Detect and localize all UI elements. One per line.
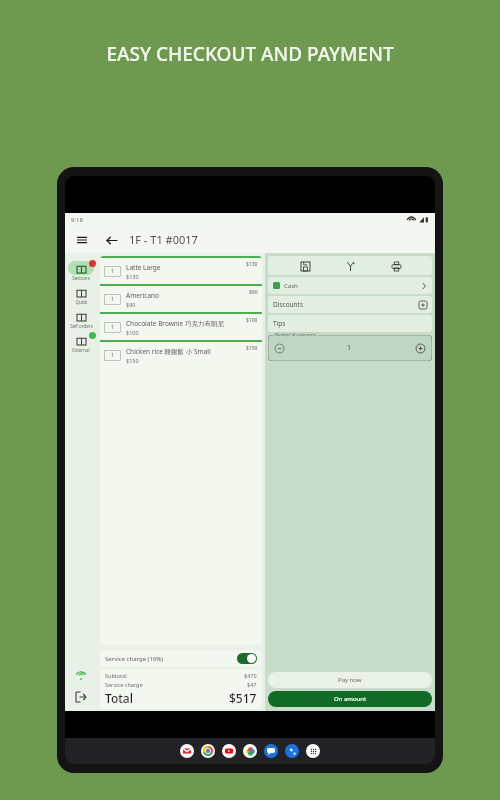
button[interactable]: 1 — [100, 340, 262, 368]
button[interactable]: Service charge (10%) — [100, 650, 262, 667]
staticText: $130 — [126, 273, 139, 280]
staticText: $90 — [126, 301, 136, 308]
button[interactable]: External — [65, 331, 97, 355]
staticText: 9:18 — [71, 216, 83, 224]
button[interactable]: 1 — [100, 312, 262, 340]
staticText: 1 — [111, 324, 114, 331]
button[interactable]: Save — [296, 257, 314, 275]
staticText: Latte Large — [126, 263, 161, 272]
staticText: 1 — [111, 296, 114, 303]
button[interactable]: App — [201, 744, 215, 758]
staticText: Total — [105, 690, 133, 706]
staticText: Chicken rice 雞腿飯 小 Small — [126, 347, 211, 356]
button[interactable]: Pay now — [268, 672, 432, 688]
staticText: Sections — [72, 275, 90, 281]
staticText: Cash — [284, 282, 298, 290]
staticText: External — [72, 347, 90, 353]
staticText: Tips — [273, 319, 286, 328]
staticText: $470 — [244, 672, 257, 679]
button[interactable]: Increase — [416, 344, 425, 353]
button[interactable]: Tips — [268, 315, 432, 332]
staticText: Quick — [75, 299, 88, 305]
staticText: Service charge — [105, 681, 143, 688]
button[interactable]: App — [180, 744, 194, 758]
button[interactable]: App — [264, 744, 278, 758]
staticText: EASY CHECKOUT AND PAYMENT — [0, 41, 500, 67]
staticText: Number of customers — [274, 332, 318, 337]
staticText: 1F - T1 #0017 — [129, 232, 198, 247]
button[interactable]: Back — [99, 228, 123, 252]
button[interactable]: Quick — [65, 283, 97, 307]
staticText: Self orders — [70, 323, 93, 329]
staticText: Discounts — [273, 300, 304, 309]
button[interactable]: Decrease — [275, 344, 284, 353]
button[interactable]: Split — [341, 257, 359, 275]
staticText: 1 — [111, 268, 114, 275]
staticText: Service charge (10%) — [105, 655, 164, 663]
staticText: $100 — [246, 317, 258, 324]
button[interactable]: App — [285, 744, 299, 758]
button[interactable]: 1 — [100, 256, 262, 284]
staticText: $150 — [126, 357, 139, 364]
button[interactable]: App — [222, 744, 236, 758]
button[interactable]: Logout — [70, 686, 92, 708]
staticText: Subtotal — [105, 672, 127, 679]
button[interactable]: 1 — [100, 284, 262, 312]
staticText: Americano — [126, 291, 159, 300]
button[interactable]: App — [243, 744, 257, 758]
staticText: $47 — [247, 681, 257, 688]
staticText: $517 — [229, 690, 257, 706]
button[interactable]: Cash — [268, 277, 432, 294]
staticText: On amount — [334, 695, 367, 703]
button[interactable]: Menu — [65, 226, 99, 253]
staticText: $130 — [246, 261, 258, 268]
button[interactable]: Self orders — [65, 307, 97, 331]
button[interactable]: Discounts — [268, 296, 432, 313]
staticText: 1 — [347, 343, 352, 353]
button[interactable]: On amount — [268, 691, 432, 707]
staticText: $90 — [249, 289, 258, 296]
staticText: Pay now — [338, 676, 362, 684]
button[interactable]: Sections — [65, 259, 97, 283]
button[interactable]: App — [306, 744, 320, 758]
staticText: 1 — [111, 352, 114, 359]
staticText: Chocolate Brownie 巧克力布朗尼 — [126, 319, 224, 328]
staticText: $150 — [246, 345, 258, 352]
button[interactable]: Print — [387, 257, 405, 275]
staticText: $100 — [126, 329, 139, 336]
